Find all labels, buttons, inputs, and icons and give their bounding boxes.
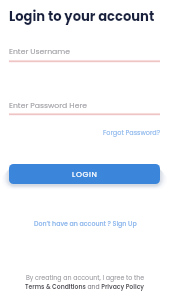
staticText: Enter Username	[9, 46, 70, 57]
button[interactable]: Don’t have an account ? Sign Up	[34, 219, 137, 228]
staticText: Login to your account	[9, 7, 155, 25]
staticText: Enter Password Here	[9, 100, 88, 111]
button[interactable]: Forgot Password?	[103, 128, 161, 137]
staticText: Don’t have an account ? Sign Up	[34, 219, 137, 228]
button[interactable]: Enter Password Here	[9, 100, 160, 116]
staticText: Forgot Password?	[103, 128, 161, 137]
staticText: Terms & Conditions and Privacy Policy	[25, 283, 144, 292]
staticText: LOGIN	[72, 169, 98, 180]
button[interactable]: Enter Username	[9, 46, 160, 62]
staticText: By creating an account, I agree to the	[26, 273, 145, 282]
button[interactable]: Terms & Conditions and Privacy Policy	[25, 283, 144, 292]
button[interactable]: LOGIN	[9, 164, 160, 184]
